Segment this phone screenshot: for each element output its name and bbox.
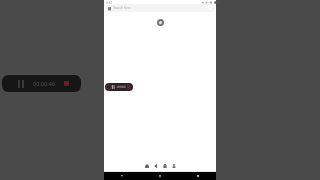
button[interactable]: Profile <box>169 161 178 170</box>
button[interactable]: Home <box>157 173 163 179</box>
button[interactable]: Home <box>142 161 151 170</box>
staticText: 00:00:46 <box>33 80 56 88</box>
other: Status icons <box>202 1 214 4</box>
button[interactable]: Loading <box>157 19 164 26</box>
button[interactable]: Recents <box>195 173 201 179</box>
button[interactable]: Updates <box>151 161 160 170</box>
staticText: 9:41 <box>106 1 113 5</box>
button[interactable]: Back <box>119 173 125 179</box>
button[interactable]: Pause <box>16 79 25 88</box>
button[interactable]: Stop recording <box>62 79 71 88</box>
staticText: Search here <box>113 6 131 10</box>
button[interactable]: Orders <box>160 161 169 170</box>
button[interactable]: Search here <box>106 4 214 12</box>
button[interactable]: Recording controls <box>105 83 133 91</box>
